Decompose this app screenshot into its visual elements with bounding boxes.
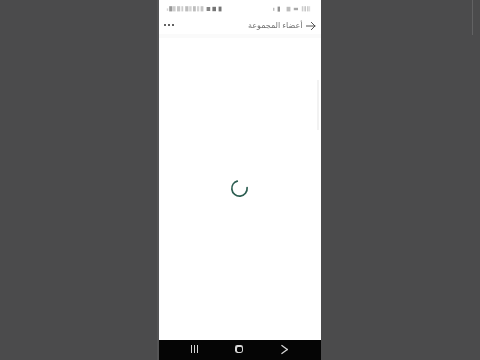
button[interactable]: Home	[230, 340, 248, 358]
staticText: أعضاء المجموعة	[248, 19, 303, 30]
button[interactable]: Back	[275, 340, 293, 358]
button[interactable]: Recents	[185, 340, 203, 358]
button[interactable]: More options	[159, 14, 179, 36]
button[interactable]: Back	[304, 19, 317, 32]
